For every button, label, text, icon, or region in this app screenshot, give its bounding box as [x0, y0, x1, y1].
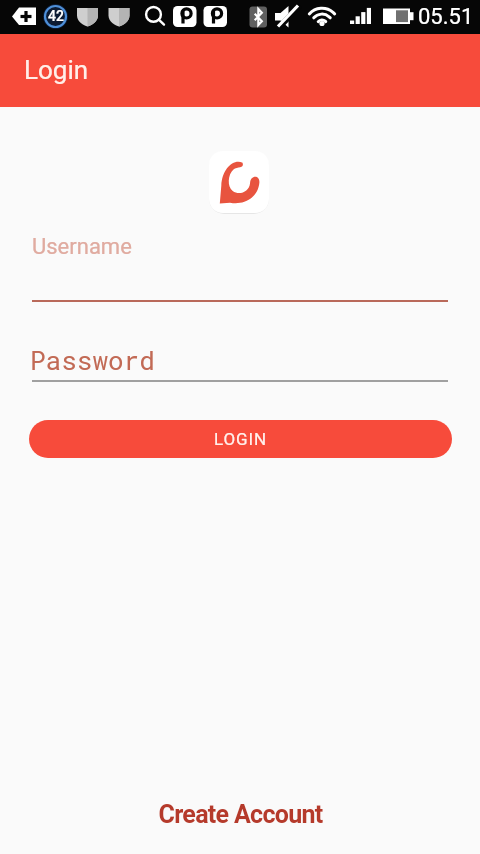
staticText: 42: [48, 8, 64, 24]
button[interactable]: Create Account: [0, 798, 480, 830]
staticText: Username: [32, 234, 132, 260]
staticText: Login: [24, 55, 89, 85]
staticText: LOGIN: [214, 429, 268, 449]
staticText: Password: [30, 343, 155, 377]
button[interactable]: LOGIN: [29, 420, 452, 458]
staticText: Create Account: [158, 800, 323, 829]
button[interactable]: Password: [32, 339, 448, 382]
staticText: 05.51: [418, 4, 474, 30]
other: App logo: [208, 150, 270, 214]
button[interactable]: Username: [32, 230, 448, 302]
